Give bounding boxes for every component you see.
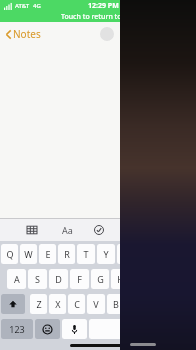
staticText: B	[113, 298, 119, 310]
button[interactable]: Emoji	[35, 319, 60, 339]
staticText: Y	[103, 248, 109, 260]
button[interactable]: A	[7, 269, 26, 289]
button[interactable]: Touch to return to call	[0, 12, 196, 22]
staticText: AT&T	[15, 2, 30, 10]
button[interactable]: Dictation	[62, 319, 87, 339]
button[interactable]: R	[58, 244, 75, 264]
staticText: 123	[9, 323, 25, 335]
button[interactable]: Notes	[5, 27, 41, 41]
button[interactable]: C	[68, 294, 85, 314]
staticText: Aa	[62, 224, 73, 236]
staticText: T	[83, 248, 89, 260]
staticText: 4G	[33, 2, 41, 10]
button[interactable]: U	[117, 244, 135, 264]
staticText: S	[35, 273, 40, 285]
staticText: Z	[36, 298, 42, 310]
button[interactable]: Shift	[1, 294, 25, 314]
button[interactable]: X	[49, 294, 66, 314]
staticText: E	[45, 248, 51, 260]
button[interactable]: 123	[1, 319, 33, 339]
staticText: H	[117, 273, 124, 285]
button[interactable]: F	[70, 269, 89, 289]
button[interactable]: E	[39, 244, 56, 264]
staticText: Notes	[13, 27, 41, 41]
button[interactable]: V	[87, 294, 105, 314]
staticText: Q	[6, 248, 14, 260]
button[interactable]: Aa	[59, 222, 75, 238]
staticText: F	[77, 273, 82, 285]
button[interactable]: Table	[24, 222, 40, 238]
staticText: X	[55, 298, 61, 310]
staticText: Touch to return to call	[61, 12, 135, 22]
button[interactable]: B	[107, 294, 125, 314]
staticText: A	[14, 273, 20, 285]
staticText: G	[97, 273, 104, 285]
button[interactable]: S	[28, 269, 47, 289]
button[interactable]: H	[111, 269, 129, 289]
staticText: C	[74, 298, 80, 310]
button[interactable]: Y	[97, 244, 115, 264]
button[interactable]: Account	[100, 27, 114, 41]
button[interactable]: Checklist	[91, 222, 107, 238]
staticText: R	[64, 248, 70, 260]
button[interactable]: D	[49, 269, 68, 289]
staticText: W	[24, 248, 33, 260]
button[interactable]: space	[89, 319, 195, 339]
button[interactable]: Z	[30, 294, 47, 314]
staticText: V	[93, 298, 99, 310]
staticText: 12:29 PM	[88, 1, 119, 11]
button[interactable]: G	[91, 269, 109, 289]
button[interactable]: T	[77, 244, 95, 264]
button[interactable]: W	[20, 244, 37, 264]
staticText: D	[55, 273, 62, 285]
button[interactable]: Q	[1, 244, 18, 264]
